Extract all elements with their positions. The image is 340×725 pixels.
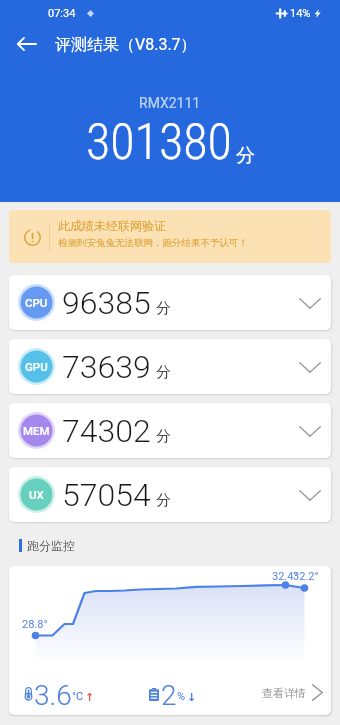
staticText: 分 [156,363,171,382]
staticText: 2 [161,679,177,712]
staticText: 3.6 [34,679,72,712]
button[interactable]: CPU [9,275,331,330]
staticText: 分 [156,491,171,510]
button[interactable]: Expand details [297,418,323,444]
staticText: 此成绩未经联网验证 [58,218,166,233]
staticText: 32.4° [272,570,298,583]
button[interactable]: Expand details [297,354,323,380]
staticText: 分 [156,427,171,446]
staticText: 32.2° [293,570,319,583]
staticText: 评测结果（V8.3.7） [55,35,197,55]
staticText: 96385 [62,284,151,322]
button[interactable]: GPU [9,339,331,394]
staticText: GPU [25,360,48,373]
staticText: ↑ [85,691,95,704]
button[interactable]: Expand details [297,290,323,316]
button[interactable]: Expand details [297,482,323,508]
staticText: °C [72,690,84,703]
staticText: 14% [290,7,311,20]
staticText: MEM [23,424,50,437]
staticText: 73639 [62,348,151,386]
staticText: 74302 [62,412,151,450]
staticText: CPU [25,296,48,309]
staticText: RMX2111 [139,95,201,111]
staticText: 07:34 [48,7,76,20]
button[interactable]: UX [9,467,331,522]
staticText: 57054 [62,476,151,514]
button[interactable]: MEM [9,403,331,458]
staticText: % [177,690,186,703]
staticText: 28.8° [22,618,48,631]
staticText: 跑分监控 [27,538,75,553]
button[interactable]: 此成绩未经联网验证 [9,210,331,263]
staticText: 分 [156,299,171,318]
staticText: UX [29,488,44,501]
staticText: ↓ [187,691,197,704]
staticText: 301380 [86,113,232,172]
staticText: 查看详情 [262,686,306,700]
staticText: 分 [236,144,255,168]
button[interactable]: Back [8,26,44,62]
button[interactable]: 查看详情 [262,684,331,701]
staticText: 检测到安兔兔无法联网，跑分结果不予认可！ [58,237,248,249]
